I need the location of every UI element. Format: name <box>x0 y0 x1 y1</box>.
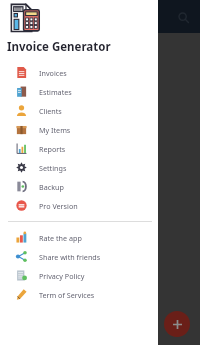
button[interactable]: Reports <box>0 139 158 158</box>
button[interactable]: Add invoice <box>164 311 190 337</box>
staticText: Rate the app <box>39 233 82 243</box>
button[interactable]: Share with friends <box>0 247 158 266</box>
staticText: Clients <box>39 106 62 116</box>
staticText: Pro Version <box>39 201 78 211</box>
staticText: Backup <box>39 182 64 192</box>
staticText: Reports <box>39 144 66 154</box>
button[interactable]: Search <box>172 6 194 28</box>
staticText: No Invoice <box>73 195 128 210</box>
staticText: Settings <box>39 163 67 173</box>
button[interactable]: Rate the app <box>0 228 158 247</box>
button[interactable]: Settings <box>0 158 158 177</box>
staticText: Estimates <box>39 87 72 97</box>
button[interactable]: Term of Services <box>0 285 158 304</box>
staticText: Share with friends <box>39 252 101 262</box>
button[interactable]: Clients <box>0 101 158 120</box>
staticText: Term of Services <box>39 290 95 300</box>
staticText: Privacy Policy <box>39 271 85 281</box>
button[interactable]: My Items <box>0 120 158 139</box>
button[interactable]: Backup <box>0 177 158 196</box>
button[interactable]: Estimates <box>0 82 158 101</box>
button[interactable]: Invoices <box>0 63 158 82</box>
button[interactable]: Pro Version <box>0 196 158 215</box>
staticText: My Items <box>39 125 71 135</box>
button[interactable]: Privacy Policy <box>0 266 158 285</box>
staticText: Invoice Generator <box>7 39 111 55</box>
staticText: Invoices <box>39 68 67 78</box>
